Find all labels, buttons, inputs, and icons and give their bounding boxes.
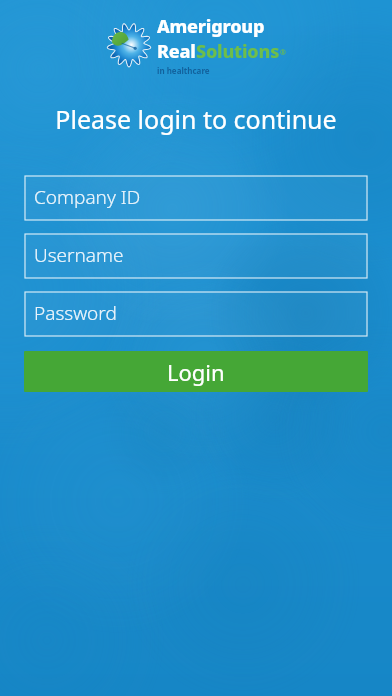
button[interactable]: Login: [24, 351, 368, 392]
button[interactable]: Password: [24, 292, 368, 336]
staticText: Real: [157, 39, 196, 64]
staticText: Solutions: [196, 39, 280, 64]
staticText: Username: [34, 242, 124, 268]
staticText: Login: [167, 357, 225, 387]
button[interactable]: Username: [24, 234, 368, 278]
button[interactable]: Company ID: [24, 176, 368, 220]
staticText: ®: [280, 48, 286, 58]
staticText: Password: [34, 300, 117, 326]
staticText: Please login to continue: [55, 102, 337, 136]
staticText: Amerigroup: [157, 14, 265, 39]
staticText: Company ID: [34, 184, 141, 210]
other: Amerigroup RealSolutions in healthcare: [106, 14, 286, 76]
staticText: in healthcare: [157, 65, 210, 76]
